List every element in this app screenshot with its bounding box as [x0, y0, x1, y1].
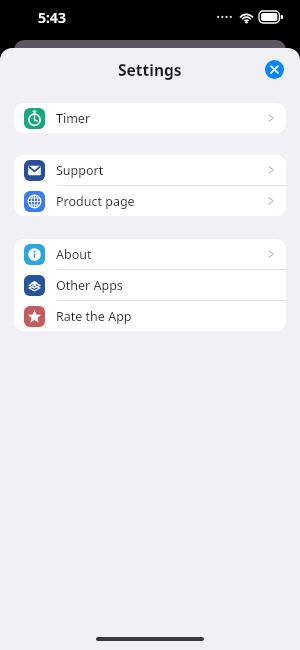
button[interactable]: Product page [14, 186, 286, 216]
staticText: Support [56, 162, 104, 179]
staticText: 5:43 [38, 8, 66, 27]
staticText: Timer [56, 110, 91, 127]
staticText: About [56, 246, 92, 263]
button[interactable]: Rate the App [14, 301, 286, 331]
button[interactable]: About [14, 239, 286, 269]
button[interactable]: Close settings [259, 54, 289, 84]
button[interactable]: Support [14, 155, 286, 185]
button[interactable]: Timer [14, 103, 286, 133]
staticText: Rate the App [56, 308, 132, 325]
staticText: Settings [118, 59, 182, 80]
staticText: Product page [56, 193, 135, 210]
staticText: Other Apps [56, 277, 123, 294]
button[interactable]: Other Apps [14, 270, 286, 300]
